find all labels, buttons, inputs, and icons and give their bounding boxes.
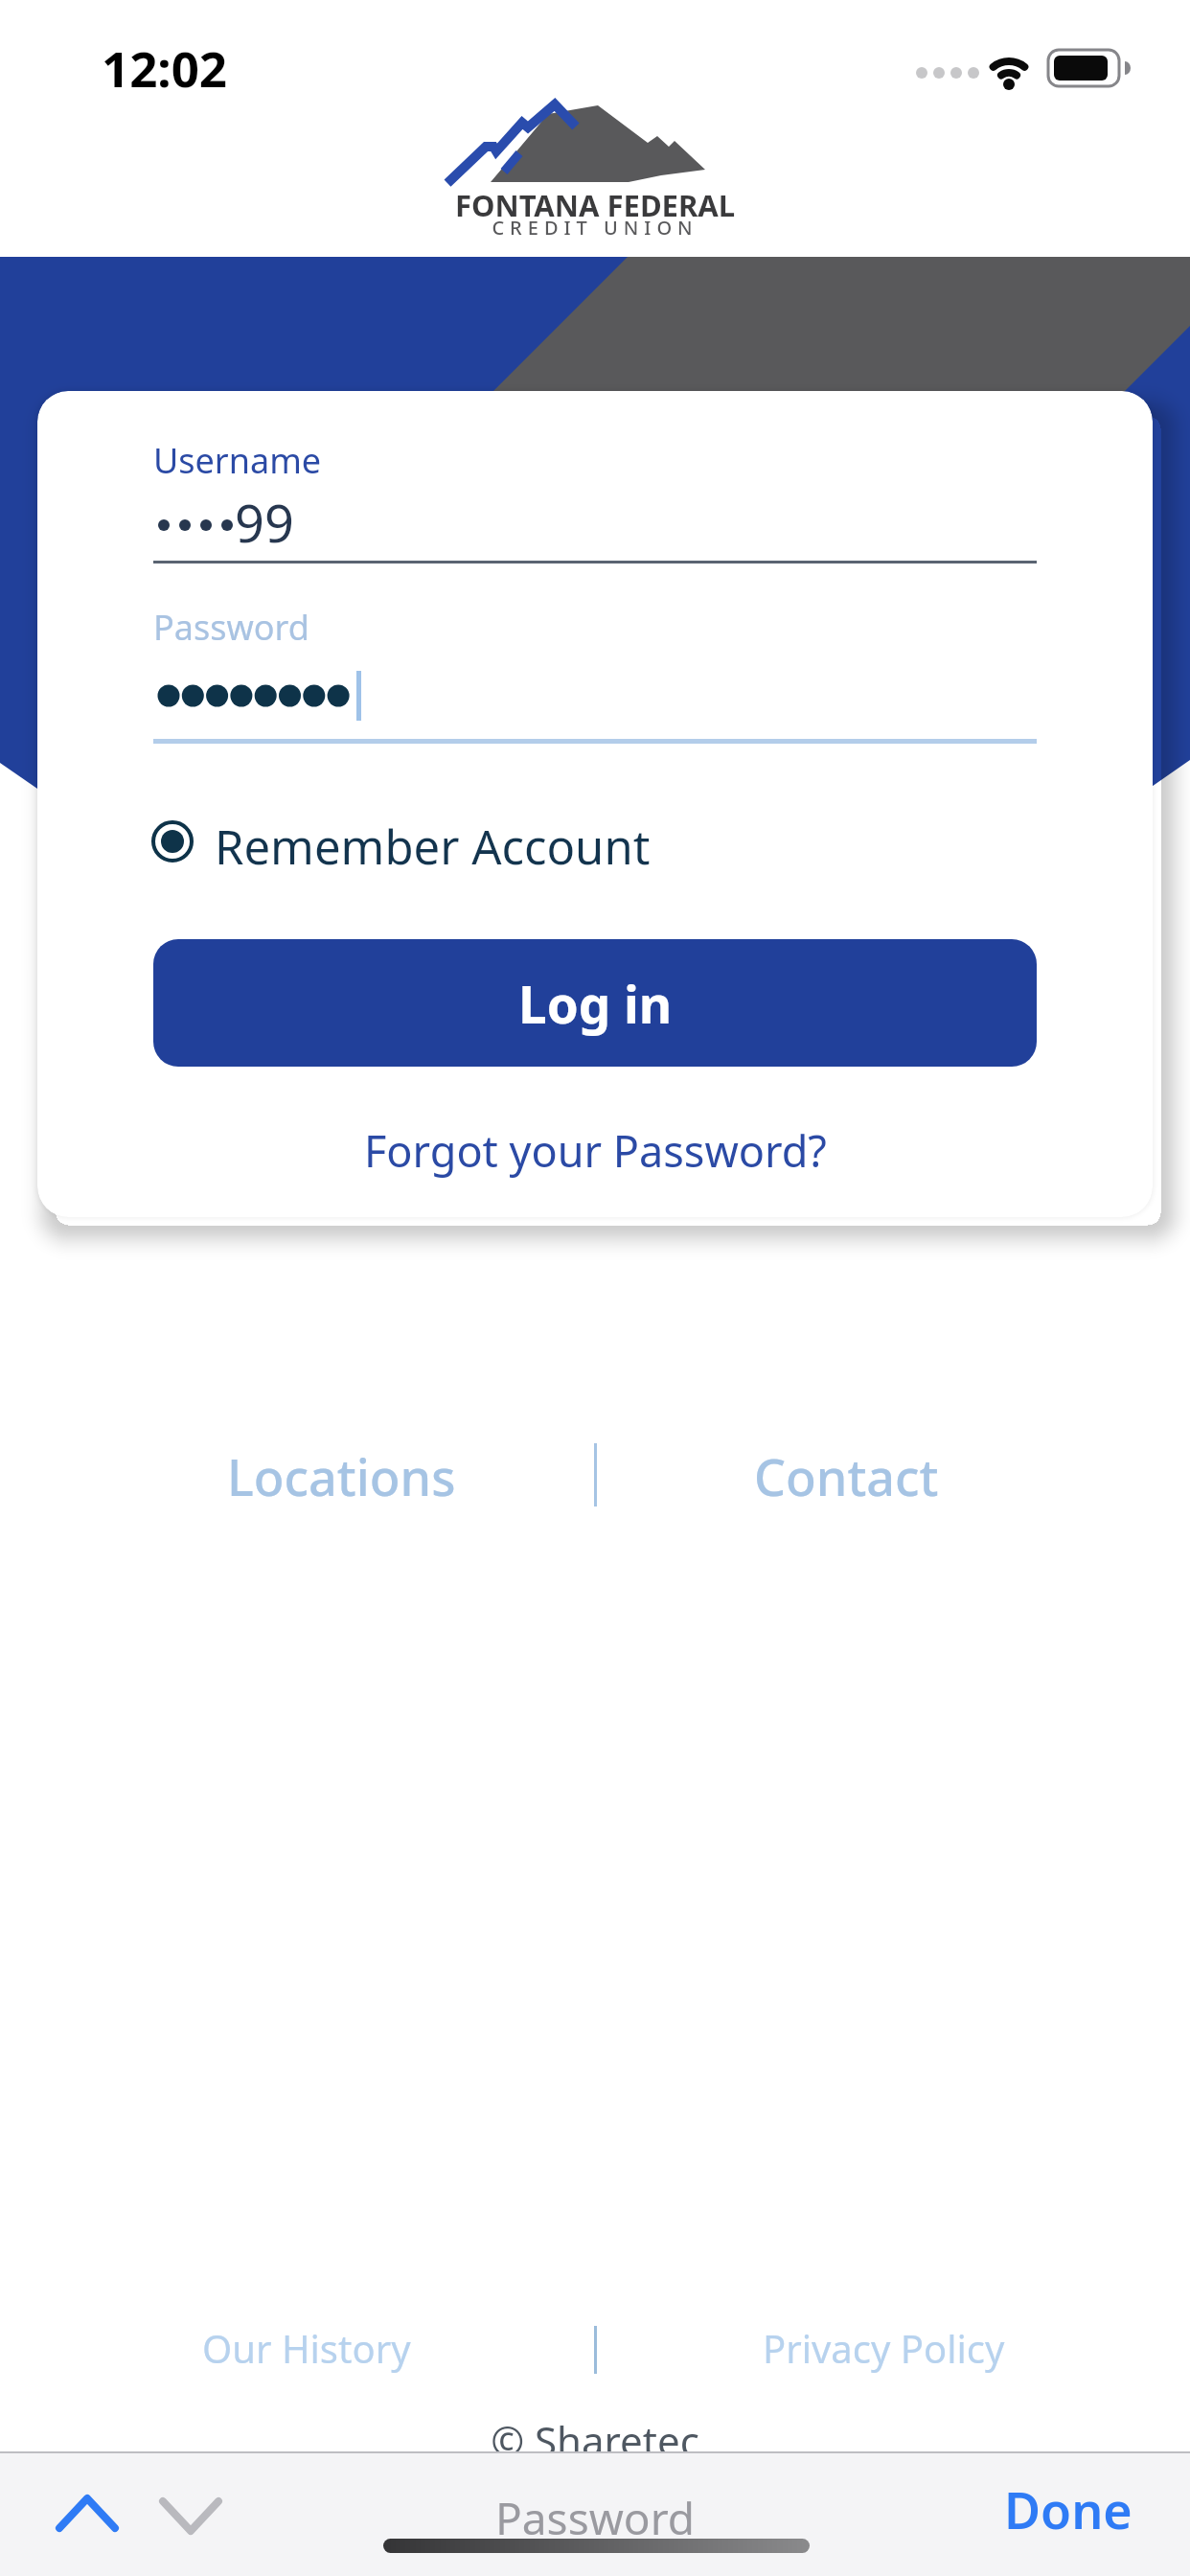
button[interactable]: Privacy Policy [721,2319,1046,2377]
staticText: Remember Account [215,815,651,879]
staticText: Log in [518,969,673,1038]
button[interactable]: Locations [140,1442,542,1509]
button[interactable] [38,2480,144,2547]
staticText: Locations [227,1442,456,1509]
staticText: 99 [235,487,294,558]
staticText: Privacy Policy [763,2322,1005,2374]
staticText: Password [0,2488,1190,2548]
button[interactable]: Forgot your Password? [364,1121,827,1180]
staticText: 12:02 [102,34,228,101]
staticText: CREDIT UNION [0,215,1190,241]
staticText: Username [153,437,322,484]
staticText: Our History [202,2322,411,2374]
button[interactable]: Done [977,2471,1159,2547]
staticText: FONTANA FEDERAL [0,185,1190,225]
staticText: Contact [754,1442,939,1509]
staticText: Done [1004,2475,1133,2543]
button[interactable] [143,813,679,872]
button[interactable]: Our History [144,2319,469,2377]
button[interactable] [142,2480,247,2547]
staticText: Password [153,604,309,651]
button[interactable]: Log in [153,939,1037,1067]
staticText: © Sharetec [0,2413,1190,2468]
button[interactable]: Contact [645,1442,1047,1509]
